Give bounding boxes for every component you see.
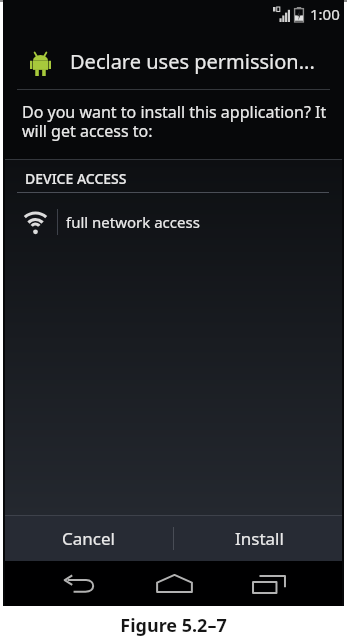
staticText: Install	[235, 527, 284, 550]
staticText: Figure 5.2–7	[120, 613, 227, 638]
button[interactable]: full network access	[3, 201, 344, 243]
staticText: 1:00	[310, 4, 340, 24]
button[interactable]: Cancel	[3, 516, 173, 561]
button[interactable]: Install	[174, 516, 344, 561]
button[interactable]: Recents	[239, 561, 299, 606]
button[interactable]: Home	[144, 561, 204, 606]
button[interactable]: Back	[49, 561, 109, 606]
staticText: DEVICE ACCESS	[25, 169, 127, 188]
staticText: Cancel	[62, 527, 115, 550]
staticText: Declare uses permission...	[70, 48, 315, 75]
staticText: full network access	[66, 212, 200, 232]
staticText: Do you want to install this application?…	[22, 101, 332, 142]
button[interactable]: Declare uses permission...	[3, 28, 344, 89]
